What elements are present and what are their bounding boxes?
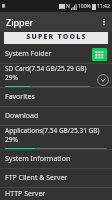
staticText: 100% [78,3,91,10]
button[interactable]: System Information [0,150,112,168]
button[interactable]: Favorites [0,88,112,106]
staticText: System Information [5,154,71,164]
button[interactable]: SD Card(7.54 GB/25.29 GB) 29% [0,64,112,87]
staticText: SUPER TOOLS [26,32,87,42]
staticText: System Folder [5,49,52,59]
staticText: FTP Client & Server [5,173,68,183]
button[interactable]: Advertisement Super Tools [4,32,108,44]
button[interactable]: System Folder [0,45,112,63]
button[interactable]: Download [0,107,112,125]
button[interactable]: FTP Client & Server [0,169,112,187]
staticText: Download [5,111,39,121]
staticText: SD Card(7.54 GB/25.29 GB) 29% [5,64,90,82]
staticText: Favorites [5,92,35,102]
button[interactable]: Applications(7.54 GB/25.31 GB) 29% [0,126,112,149]
button[interactable]: HTTP Server [0,188,112,200]
staticText: Zipper [6,16,34,28]
staticText: HTTP Server [5,189,46,199]
staticText: Applications(7.54 GB/25.31 GB) 29% [5,126,107,144]
button[interactable]: More options [96,14,112,30]
button[interactable]: Expand [96,73,109,86]
staticText: 11:42 [97,3,110,10]
staticText: N [66,3,70,10]
